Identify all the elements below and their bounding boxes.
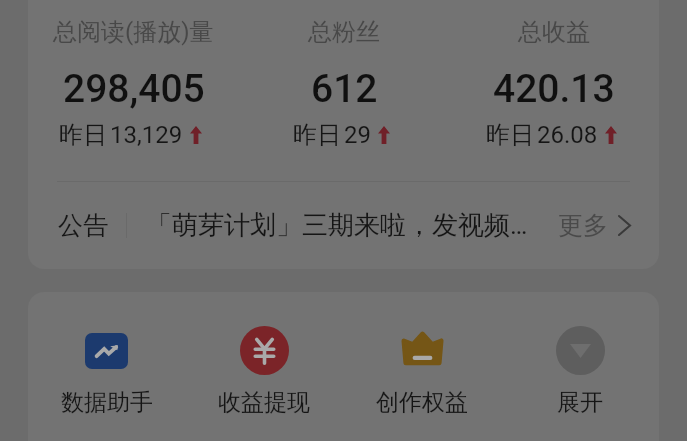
button[interactable]: 收益提现 xyxy=(185,326,343,417)
staticText: 更多 xyxy=(558,210,608,241)
button[interactable]: 创作权益 xyxy=(343,326,501,417)
staticText: 612 xyxy=(311,66,378,112)
button[interactable]: 公告 xyxy=(28,182,659,269)
other: 收益提现 xyxy=(240,326,289,375)
button[interactable]: 展开 xyxy=(501,326,659,417)
staticText: 「萌芽计划」三期来啦，发视频… xyxy=(146,209,558,242)
staticText: 昨日 xyxy=(59,120,107,150)
staticText: 13,129 xyxy=(110,121,183,149)
other: 创作权益 xyxy=(403,333,442,364)
other: 展开 xyxy=(556,326,605,375)
staticText: 展开 xyxy=(557,388,603,417)
other: 数据助手 xyxy=(85,333,128,369)
staticText: 创作权益 xyxy=(376,388,468,417)
staticText: 420.13 xyxy=(493,66,615,112)
staticText: 总阅读(播放)量 xyxy=(53,17,214,47)
staticText: 收益提现 xyxy=(218,388,310,417)
staticText: 昨日 xyxy=(293,120,341,150)
staticText: 29 xyxy=(344,121,371,149)
staticText: 昨日 xyxy=(486,120,534,150)
staticText: 公告 xyxy=(58,210,108,241)
button[interactable]: 数据助手 xyxy=(28,326,185,417)
staticText: 数据助手 xyxy=(61,388,153,417)
staticText: 总收益 xyxy=(518,17,590,47)
staticText: 总粉丝 xyxy=(308,17,380,47)
staticText: 26.08 xyxy=(537,121,598,149)
staticText: 298,405 xyxy=(63,66,205,112)
